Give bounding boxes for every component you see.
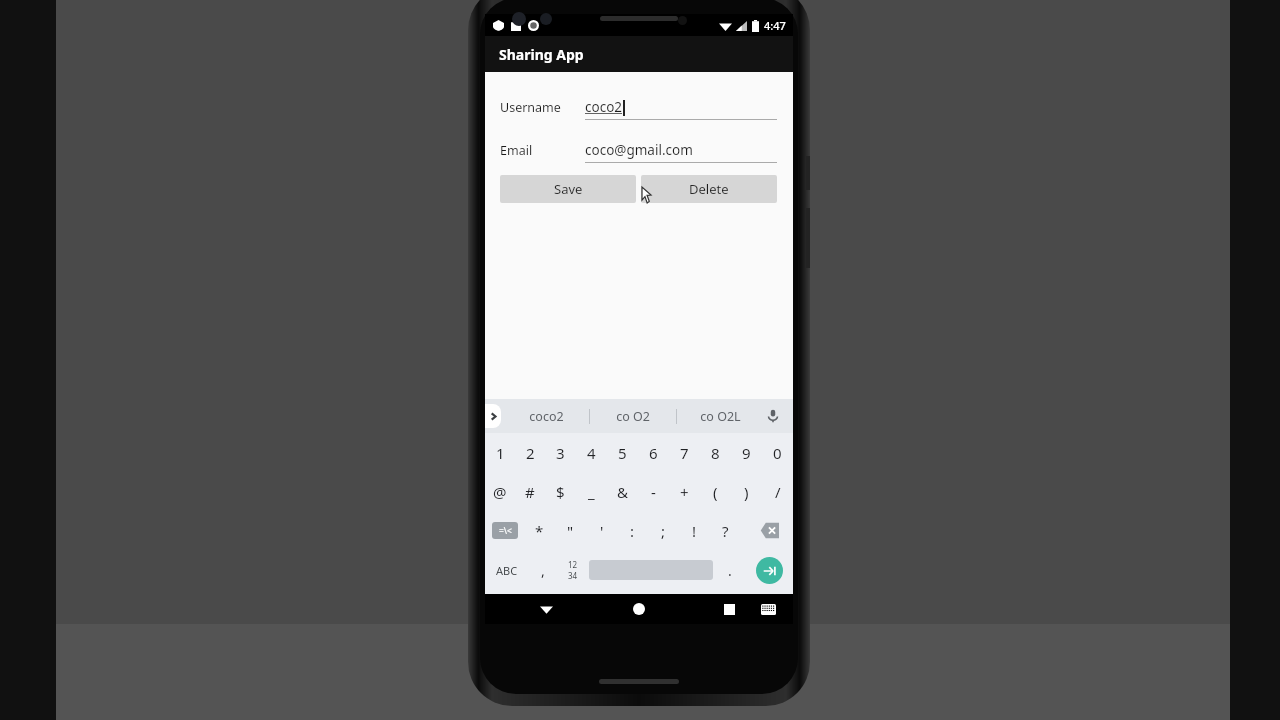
- staticText: co O2L: [700, 408, 741, 425]
- button[interactable]: ABC: [485, 550, 529, 590]
- button[interactable]: 1: [485, 433, 515, 472]
- button[interactable]: ;: [648, 511, 679, 550]
- button[interactable]: +: [669, 472, 700, 511]
- staticText: coco2: [529, 408, 564, 425]
- button[interactable]: (: [700, 472, 731, 511]
- staticText: !: [692, 521, 697, 541]
- staticText: 6: [649, 443, 658, 463]
- staticText: 4: [587, 443, 596, 463]
- staticText: 0: [773, 443, 782, 463]
- button[interactable]: #: [515, 472, 545, 511]
- button[interactable]: coco2: [503, 399, 589, 433]
- staticText: &: [617, 482, 628, 502]
- button[interactable]: .: [713, 550, 746, 590]
- staticText: $: [556, 482, 565, 502]
- button[interactable]: 3: [545, 433, 576, 472]
- staticText: ABC: [496, 563, 518, 578]
- button[interactable]: 0: [762, 433, 793, 472]
- button[interactable]: &: [607, 472, 638, 511]
- staticText: @: [493, 482, 507, 502]
- button[interactable]: ": [555, 511, 586, 550]
- staticText: 8: [711, 443, 720, 463]
- button[interactable]: Home: [628, 598, 650, 620]
- button[interactable]: Back: [535, 598, 557, 620]
- button[interactable]: 9: [731, 433, 762, 472]
- button[interactable]: Enter: [746, 550, 793, 590]
- staticText: 34: [568, 570, 578, 581]
- staticText: #: [525, 482, 535, 502]
- staticText: ": [567, 521, 574, 541]
- staticText: (: [713, 482, 718, 502]
- staticText: Sharing App: [499, 45, 584, 64]
- button[interactable]: ): [731, 472, 762, 511]
- button[interactable]: Switch keyboard: [757, 598, 779, 620]
- staticText: ,: [541, 561, 545, 580]
- button[interactable]: Numbers: [556, 550, 589, 590]
- staticText: _: [588, 482, 595, 502]
- staticText: .: [728, 561, 732, 580]
- button[interactable]: !: [679, 511, 710, 550]
- staticText: 2: [526, 443, 535, 463]
- button[interactable]: Backspace: [741, 511, 793, 550]
- staticText: 12: [568, 559, 578, 570]
- staticText: -: [651, 482, 656, 502]
- button[interactable]: co O2: [590, 399, 676, 433]
- button[interactable]: ': [586, 511, 617, 550]
- staticText: 5: [618, 443, 627, 463]
- staticText: /: [775, 482, 781, 502]
- button[interactable]: /: [762, 472, 793, 511]
- button[interactable]: Save: [500, 175, 636, 203]
- staticText: 9: [742, 443, 751, 463]
- staticText: ': [600, 521, 604, 541]
- staticText: coco@gmail.com: [585, 141, 693, 159]
- staticText: :: [630, 521, 635, 541]
- button[interactable]: Expand suggestions: [485, 404, 501, 428]
- button[interactable]: 6: [638, 433, 669, 472]
- button[interactable]: co O2L: [677, 399, 763, 433]
- staticText: Username: [500, 99, 585, 116]
- button[interactable]: =\<: [485, 511, 524, 550]
- staticText: Save: [554, 180, 583, 198]
- button[interactable]: 2: [515, 433, 545, 472]
- staticText: 4:47: [764, 18, 786, 33]
- button[interactable]: ?: [710, 511, 741, 550]
- button[interactable]: ,: [529, 550, 556, 590]
- button[interactable]: :: [617, 511, 648, 550]
- staticText: +: [680, 482, 689, 502]
- button[interactable]: Recents: [718, 598, 740, 620]
- staticText: =\<: [499, 525, 512, 537]
- button[interactable]: 8: [700, 433, 731, 472]
- staticText: ;: [661, 521, 666, 541]
- button[interactable]: *: [524, 511, 555, 550]
- button[interactable]: 7: [669, 433, 700, 472]
- button[interactable]: Voice input: [763, 406, 783, 426]
- staticText: 1: [496, 443, 505, 463]
- button[interactable]: @: [485, 472, 515, 511]
- staticText: ): [744, 482, 749, 502]
- staticText: 7: [680, 443, 689, 463]
- staticText: coco2: [585, 98, 623, 116]
- staticText: Email: [500, 142, 585, 159]
- staticText: Delete: [689, 180, 729, 198]
- staticText: ?: [722, 521, 729, 541]
- button[interactable]: $: [545, 472, 576, 511]
- staticText: co O2: [616, 408, 650, 425]
- staticText: 3: [556, 443, 565, 463]
- button[interactable]: 4: [576, 433, 607, 472]
- staticText: *: [535, 521, 544, 541]
- button[interactable]: -: [638, 472, 669, 511]
- button[interactable]: _: [576, 472, 607, 511]
- button[interactable]: 5: [607, 433, 638, 472]
- button[interactable]: Delete: [641, 175, 777, 203]
